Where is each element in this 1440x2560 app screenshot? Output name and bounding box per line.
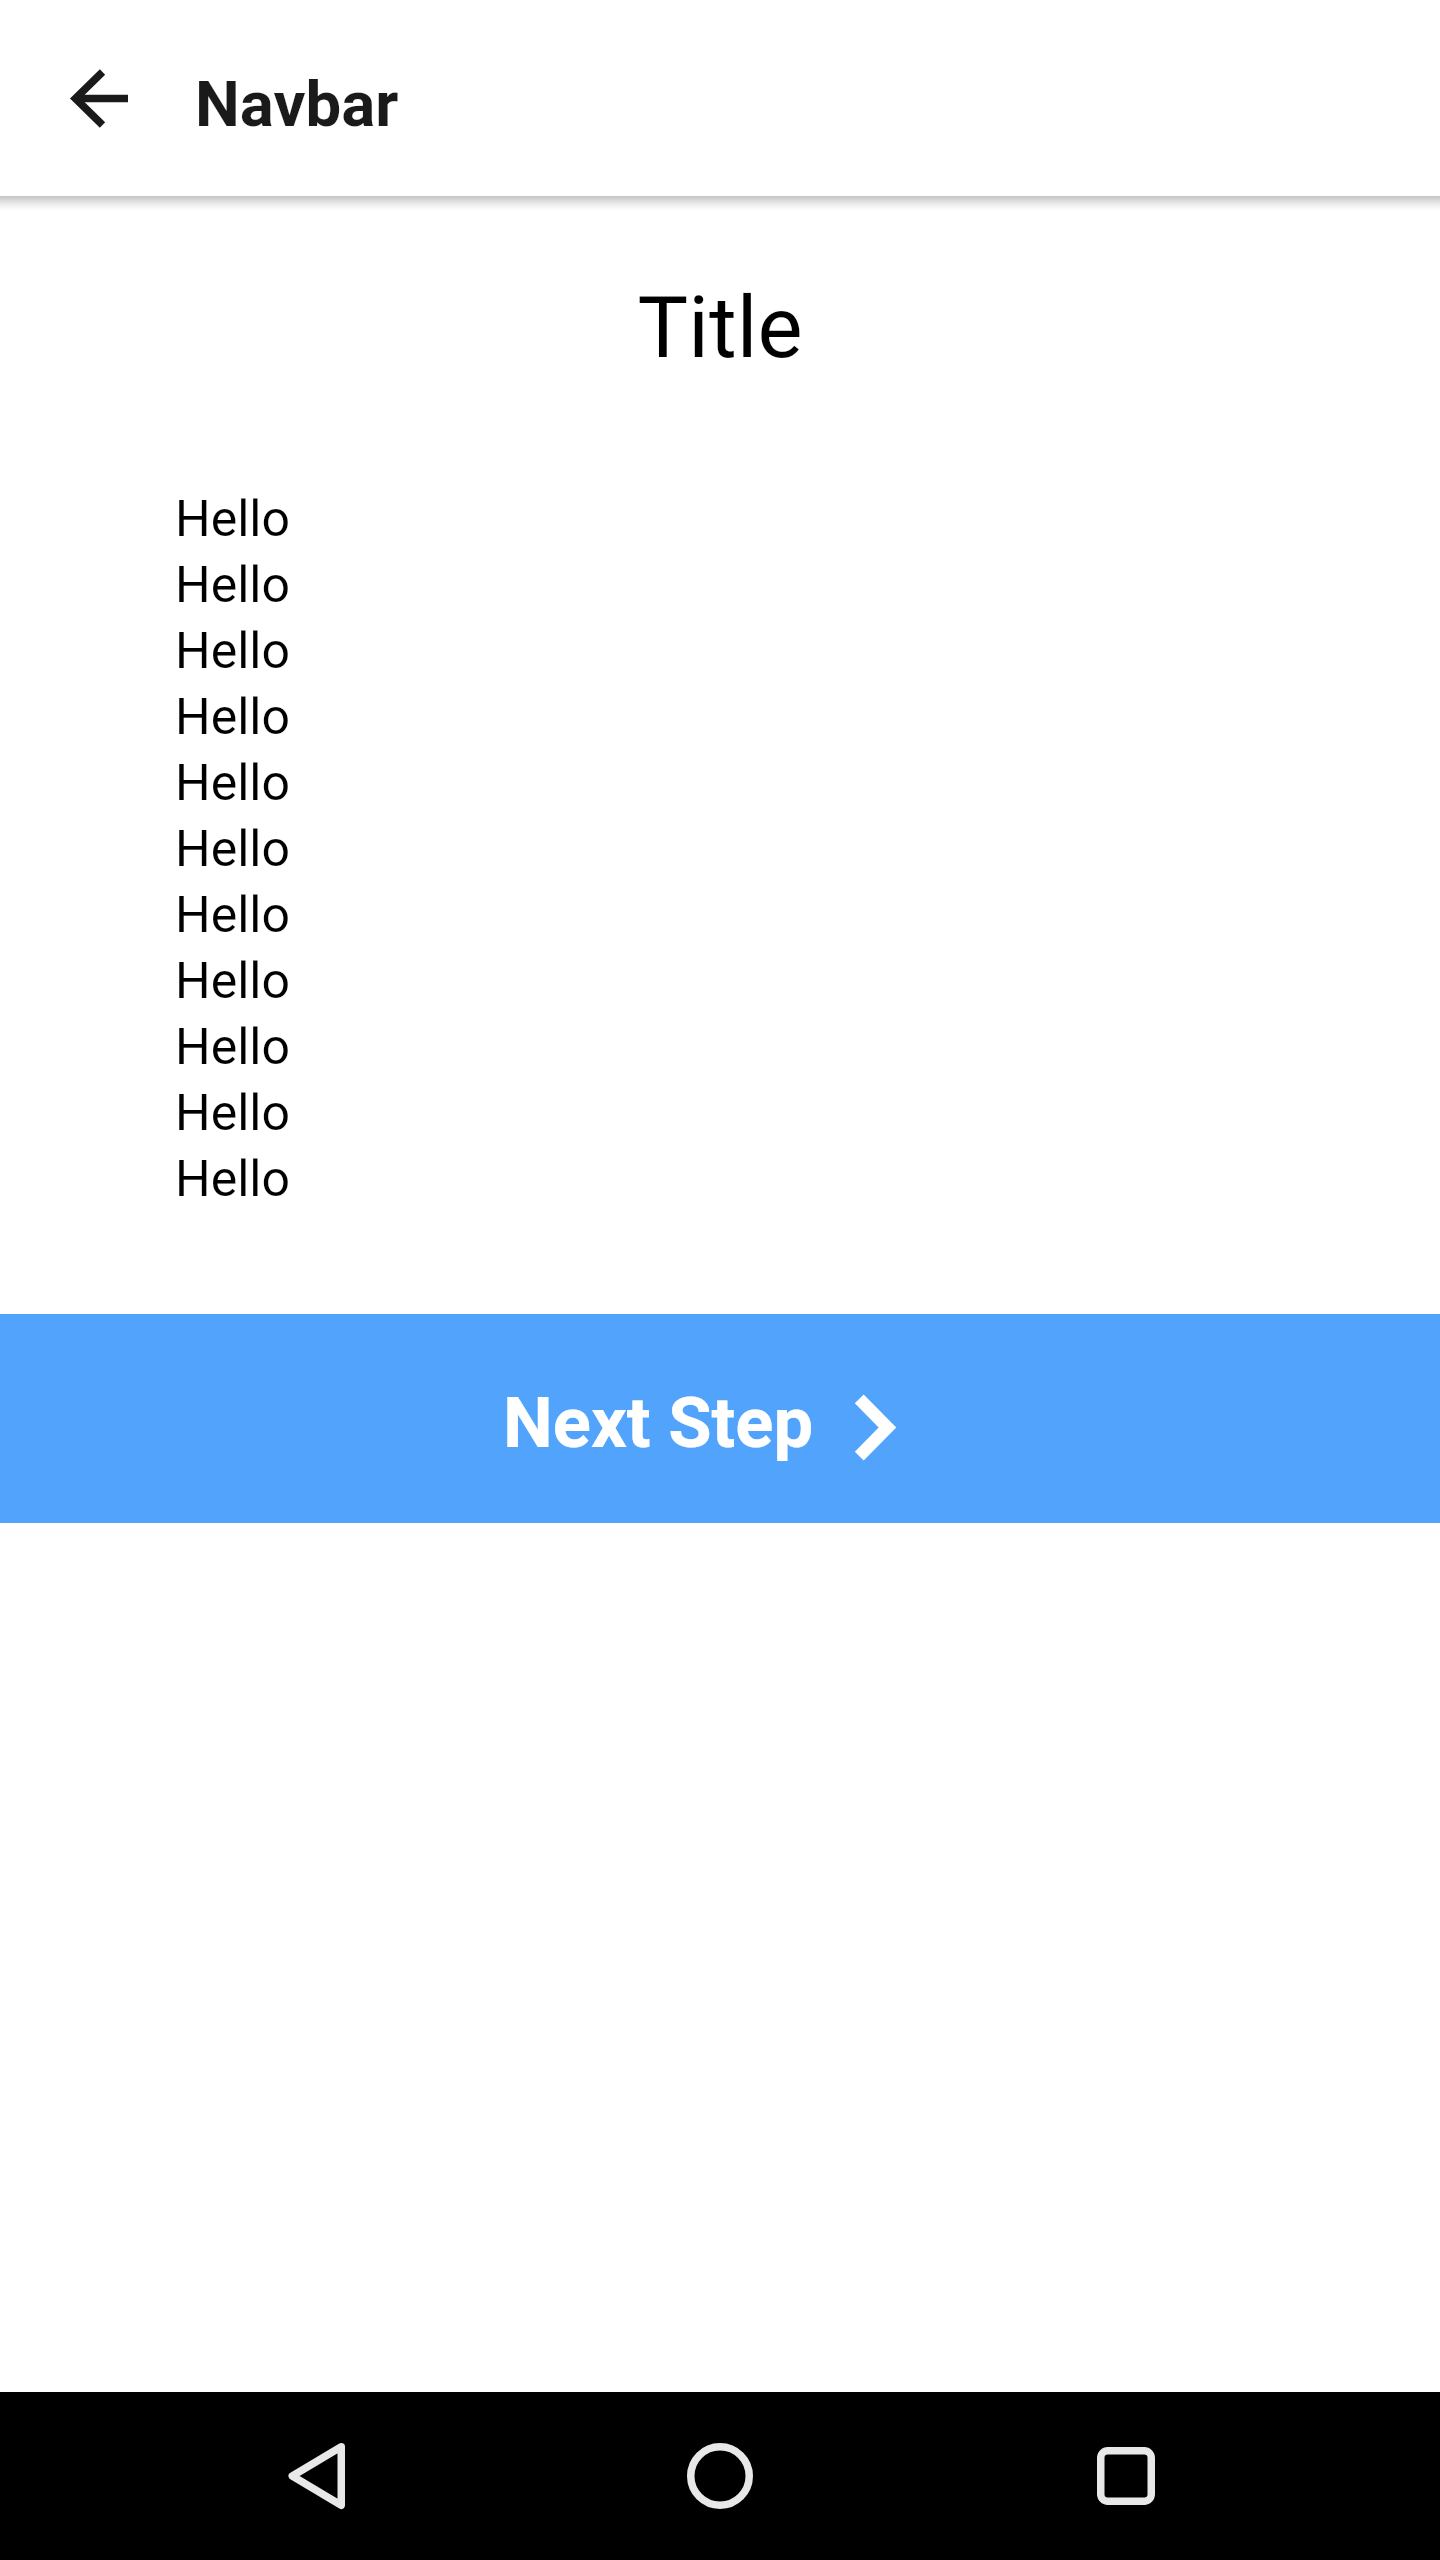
staticText: Hello <box>175 820 291 886</box>
staticText: Hello <box>175 1018 291 1084</box>
staticText: Hello <box>175 1150 291 1216</box>
staticText: Hello <box>175 952 291 1018</box>
staticText: Title <box>0 278 1440 378</box>
staticText: Hello <box>175 556 291 622</box>
staticText: Hello <box>175 886 291 952</box>
staticText: Hello <box>175 688 291 754</box>
staticText: Next Step <box>503 1382 814 1465</box>
button[interactable]: Back <box>246 2406 386 2546</box>
button[interactable]: Home <box>650 2406 790 2546</box>
button[interactable]: Recent apps <box>1056 2406 1196 2546</box>
staticText: Hello <box>175 490 291 556</box>
button[interactable]: Next Step <box>0 1314 1440 1523</box>
staticText: Navbar <box>195 67 399 141</box>
staticText: Hello <box>175 622 291 688</box>
button[interactable]: Back <box>52 50 148 146</box>
staticText: Hello <box>175 1084 291 1150</box>
staticText: Hello <box>175 754 291 820</box>
